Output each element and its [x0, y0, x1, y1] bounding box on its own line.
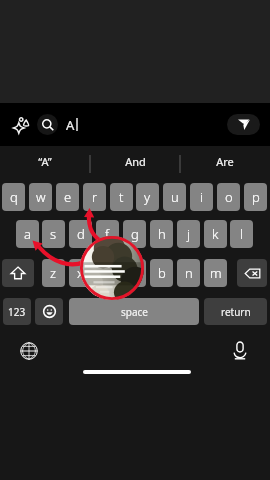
- button[interactable]: return: [204, 298, 267, 325]
- staticText: y: [144, 188, 151, 206]
- staticText: i: [200, 188, 204, 206]
- staticText: space: [121, 305, 148, 319]
- button[interactable]: Search: [37, 114, 58, 135]
- button[interactable]: And: [90, 146, 180, 176]
- staticText: h: [158, 225, 166, 243]
- button[interactable]: Switch language: [20, 342, 38, 360]
- button[interactable]: p: [244, 183, 267, 211]
- staticText: And: [125, 154, 146, 169]
- button[interactable]: b: [150, 259, 173, 287]
- button[interactable]: e: [56, 183, 79, 211]
- button[interactable]: Dictate: [230, 340, 250, 360]
- staticText: b: [158, 264, 166, 282]
- button[interactable]: Backspace: [237, 259, 267, 287]
- button[interactable]: j: [177, 220, 200, 248]
- staticText: A: [66, 116, 75, 134]
- staticText: q: [10, 188, 18, 206]
- button[interactable]: t: [110, 183, 133, 211]
- staticText: g: [131, 225, 139, 243]
- staticText: p: [252, 188, 260, 206]
- button[interactable]: 123: [3, 298, 31, 325]
- staticText: s: [50, 225, 57, 243]
- button[interactable]: y: [136, 183, 159, 211]
- staticText: n: [185, 264, 193, 282]
- staticText: v: [131, 264, 138, 282]
- button[interactable]: s: [42, 220, 65, 248]
- button[interactable]: n: [177, 259, 200, 287]
- staticText: a: [24, 225, 31, 243]
- button[interactable]: a: [16, 220, 39, 248]
- staticText: w: [36, 188, 46, 206]
- button[interactable]: space: [69, 298, 199, 325]
- staticText: o: [225, 188, 233, 206]
- button[interactable]: z: [42, 259, 65, 287]
- button[interactable]: f: [96, 220, 119, 248]
- staticText: l: [240, 225, 244, 243]
- staticText: r: [92, 188, 98, 206]
- staticText: c: [104, 264, 111, 282]
- button[interactable]: c: [96, 259, 119, 287]
- button[interactable]: k: [204, 220, 227, 248]
- staticText: 123: [8, 305, 26, 319]
- button[interactable]: g: [123, 220, 146, 248]
- button[interactable]: Are: [180, 146, 270, 176]
- button[interactable]: h: [150, 220, 173, 248]
- staticText: z: [50, 264, 57, 282]
- button[interactable]: w: [29, 183, 52, 211]
- button[interactable]: v: [123, 259, 146, 287]
- staticText: return: [221, 305, 251, 319]
- button[interactable]: Send: [227, 114, 260, 135]
- staticText: j: [187, 225, 191, 243]
- staticText: e: [64, 188, 72, 206]
- staticText: x: [77, 264, 84, 282]
- staticText: Are: [216, 154, 234, 169]
- button[interactable]: o: [217, 183, 240, 211]
- staticText: d: [77, 225, 85, 243]
- button[interactable]: “A”: [0, 146, 90, 176]
- button[interactable]: m: [204, 259, 227, 287]
- button[interactable]: Emoji: [35, 298, 63, 325]
- button[interactable]: r: [83, 183, 106, 211]
- staticText: m: [210, 264, 222, 282]
- button[interactable]: l: [230, 220, 253, 248]
- staticText: t: [119, 188, 124, 206]
- button[interactable]: u: [163, 183, 186, 211]
- staticText: k: [212, 225, 219, 243]
- staticText: u: [171, 188, 179, 206]
- button[interactable]: x: [69, 259, 92, 287]
- staticText: “A”: [38, 154, 52, 169]
- button[interactable]: i: [190, 183, 213, 211]
- button[interactable]: AI assist: [13, 114, 33, 134]
- staticText: f: [105, 225, 110, 243]
- button[interactable]: q: [2, 183, 25, 211]
- button[interactable]: d: [69, 220, 92, 248]
- button[interactable]: Shift: [2, 259, 34, 287]
